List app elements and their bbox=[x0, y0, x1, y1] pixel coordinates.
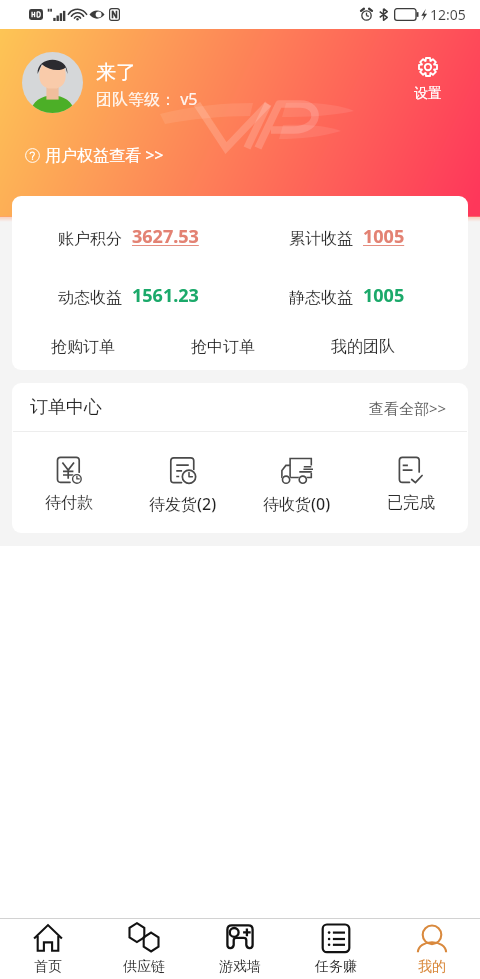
staticText: 查看全部>> bbox=[369, 398, 447, 418]
button[interactable]: 抢购订单 bbox=[12, 337, 153, 357]
button[interactable]: 查看全部>> bbox=[369, 398, 447, 418]
button[interactable]: 待收货(0) bbox=[240, 453, 354, 515]
staticText: 设置 bbox=[414, 85, 442, 103]
staticText: 1005 bbox=[363, 224, 405, 249]
button[interactable]: 待发货(2) bbox=[126, 453, 240, 515]
staticText: 3627.53 bbox=[132, 224, 199, 249]
button[interactable]: 账户积分 bbox=[58, 224, 199, 249]
staticText: 团队等级： v5 bbox=[96, 88, 198, 110]
button[interactable]: 游戏墙 bbox=[192, 919, 288, 979]
staticText: 账户积分 bbox=[58, 229, 122, 249]
button[interactable]: 动态收益 bbox=[58, 283, 199, 308]
staticText: 我的 bbox=[418, 958, 446, 976]
button[interactable]: 首页 bbox=[0, 919, 96, 979]
button[interactable]: 静态收益 bbox=[289, 283, 405, 308]
staticText: 累计收益 bbox=[289, 229, 353, 249]
staticText: 我的团队 bbox=[331, 337, 395, 357]
button[interactable]: 抢中订单 bbox=[153, 337, 293, 357]
staticText: 抢购订单 bbox=[51, 337, 115, 357]
button[interactable]: 已完成 bbox=[354, 453, 468, 513]
staticText: 订单中心 bbox=[30, 396, 102, 419]
staticText: 1005 bbox=[363, 283, 405, 308]
staticText: 用户权益查看 >> bbox=[45, 144, 164, 166]
button[interactable]: 用户权益查看 >> bbox=[25, 144, 170, 166]
staticText: 12:05 bbox=[430, 5, 466, 24]
staticText: 来了 bbox=[96, 60, 136, 85]
staticText: 供应链 bbox=[123, 958, 165, 976]
button[interactable]: 累计收益 bbox=[289, 224, 405, 249]
button[interactable]: 供应链 bbox=[96, 919, 192, 979]
staticText: 首页 bbox=[34, 958, 62, 976]
button[interactable]: 任务赚 bbox=[288, 919, 384, 979]
staticText: 待收货(0) bbox=[263, 493, 331, 515]
button[interactable]: 待付款 bbox=[12, 453, 126, 513]
button[interactable]: 设置 bbox=[402, 52, 454, 107]
staticText: 抢中订单 bbox=[191, 337, 255, 357]
staticText: 动态收益 bbox=[58, 288, 122, 308]
staticText: 任务赚 bbox=[315, 958, 357, 976]
staticText: 1561.23 bbox=[132, 283, 199, 308]
staticText: 待付款 bbox=[45, 493, 93, 513]
button[interactable]: 我的 bbox=[384, 919, 480, 979]
staticText: 游戏墙 bbox=[219, 958, 261, 976]
staticText: 静态收益 bbox=[289, 288, 353, 308]
staticText: 待发货(2) bbox=[149, 493, 217, 515]
staticText: 已完成 bbox=[387, 493, 435, 513]
button[interactable]: 我的团队 bbox=[293, 337, 433, 357]
button[interactable]: 头像 bbox=[22, 52, 83, 113]
